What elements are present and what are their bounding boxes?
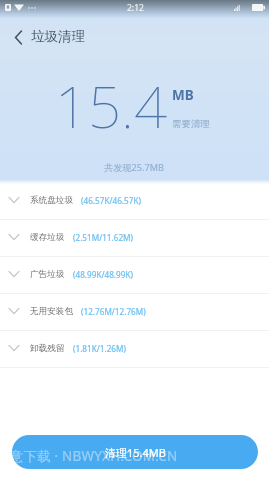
staticText: 卸载残留 <box>30 343 65 354</box>
button[interactable]: 返回 <box>8 25 28 49</box>
button[interactable]: 卸载残留 <box>0 331 269 368</box>
staticText: 共发现25.7MB <box>104 161 165 174</box>
staticText: 2:12 <box>127 2 144 14</box>
staticText: 玩意下载 · NBWYXH.COM.CN <box>0 447 178 465</box>
button[interactable]: 系统盘垃圾 <box>0 183 269 220</box>
staticText: 无用安装包 <box>30 306 73 317</box>
staticText: 需要清理 <box>172 118 210 130</box>
staticText: 清理15.4MB <box>105 445 166 460</box>
button[interactable]: 广告垃圾 <box>0 257 269 294</box>
button[interactable]: 清理15.4MB <box>12 435 258 469</box>
staticText: (48.99K/48.99K) <box>73 269 133 280</box>
staticText: 垃圾清理 <box>31 28 85 45</box>
staticText: MB <box>172 86 194 104</box>
staticText: (46.57K/46.57K) <box>81 195 141 206</box>
staticText: 系统盘垃圾 <box>30 195 73 206</box>
staticText: 广告垃圾 <box>30 269 65 280</box>
staticText: 15.4 <box>55 66 167 145</box>
staticText: (1.81K/1.26M) <box>73 343 126 354</box>
staticText: 缓存垃圾 <box>30 232 65 243</box>
button[interactable]: 无用安装包 <box>0 294 269 331</box>
staticText: (12.76M/12.76M) <box>81 306 146 317</box>
staticText: (2.51M/11.62M) <box>73 232 133 243</box>
button[interactable]: 缓存垃圾 <box>0 220 269 257</box>
